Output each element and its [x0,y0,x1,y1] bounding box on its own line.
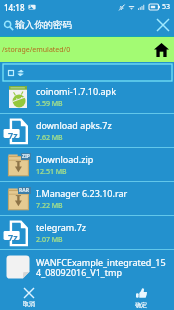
staticText: 7.22 MB [36,201,63,211]
staticText: 取消 [23,300,35,308]
button[interactable] [3,64,172,81]
button[interactable]: ZIP [0,148,174,181]
staticText: telegram.7z [36,221,87,233]
staticText: 2.07 MB [36,235,63,245]
staticText: Download.zip [36,153,94,165]
button[interactable]: 7z [0,114,174,147]
button[interactable]: coinomi-1.7.10.apk [0,81,174,113]
button[interactable]: WANFCExample_integrated_154_08092016_V1_… [0,250,174,283]
staticText: 5.59 MB [36,99,63,109]
staticText: 输入你的密码 [15,19,72,31]
button[interactable]: 输入你的密码 [0,14,174,36]
staticText: ZIP [22,153,30,160]
staticText: 12.51 MB [36,167,67,177]
button[interactable]: 取消 [13,288,45,308]
staticText: 7z [8,231,18,243]
button[interactable]: 7z [0,216,174,249]
staticText: 14:18 [4,2,25,13]
button[interactable]: Close [153,15,173,35]
staticText: download apks.7z [36,119,112,131]
staticText: 确定 [135,301,147,309]
staticText: 53 [162,2,171,12]
button[interactable]: Home [150,38,173,61]
staticText: /storage/emulated/0 [2,45,71,55]
button[interactable]: RAR [0,182,174,215]
staticText: 7.62 MB [36,133,63,143]
button[interactable]: 确定 [125,288,157,309]
staticText: WANFCExample_integrated_154_08092016_V1_… [36,256,170,278]
staticText: coinomi-1.7.10.apk [36,85,116,97]
staticText: 7z [8,129,18,141]
staticText: RAR [19,187,30,194]
staticText: I.Manager 6.23.10.rar [36,187,128,199]
